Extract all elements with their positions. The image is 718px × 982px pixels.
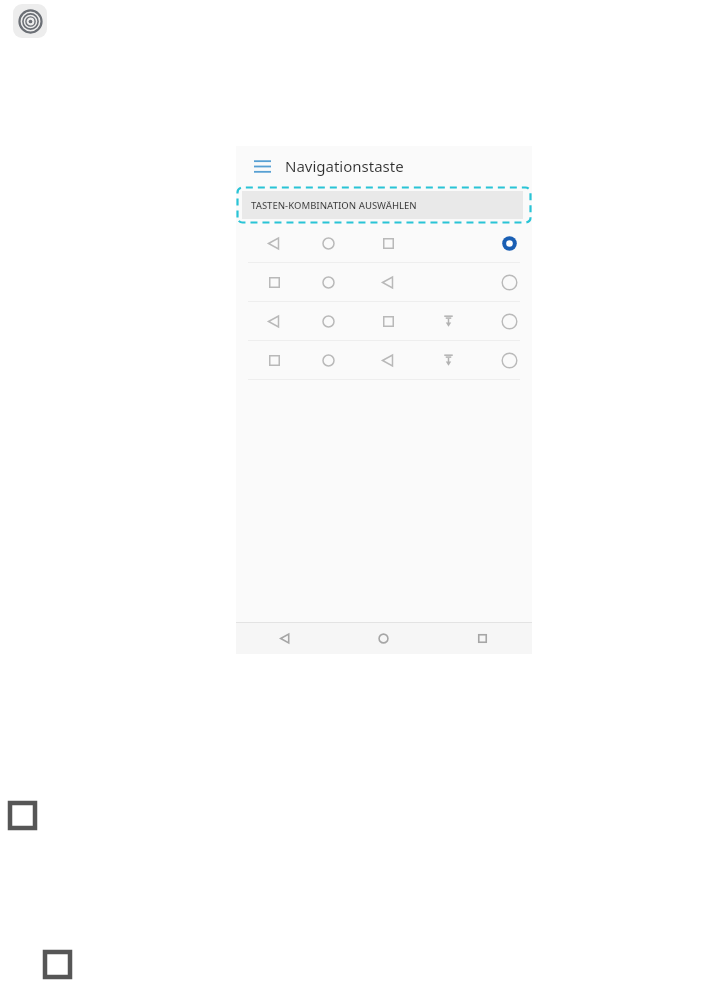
staticText: TASTEN-KOMBINATION AUSWÄHLEN	[251, 199, 417, 212]
button[interactable]: Recents	[433, 623, 532, 654]
staticText: Navigationstaste	[285, 156, 404, 176]
button[interactable]	[236, 302, 532, 341]
button[interactable]	[236, 224, 532, 263]
button[interactable]: Home	[334, 623, 433, 654]
button[interactable]: App icon	[13, 4, 47, 38]
button[interactable]: TASTEN-KOMBINATION AUSWÄHLEN	[242, 191, 523, 219]
button[interactable]: Menu	[251, 155, 273, 177]
button[interactable]	[236, 263, 532, 302]
button[interactable]	[236, 341, 532, 380]
button[interactable]: Back	[236, 623, 334, 654]
